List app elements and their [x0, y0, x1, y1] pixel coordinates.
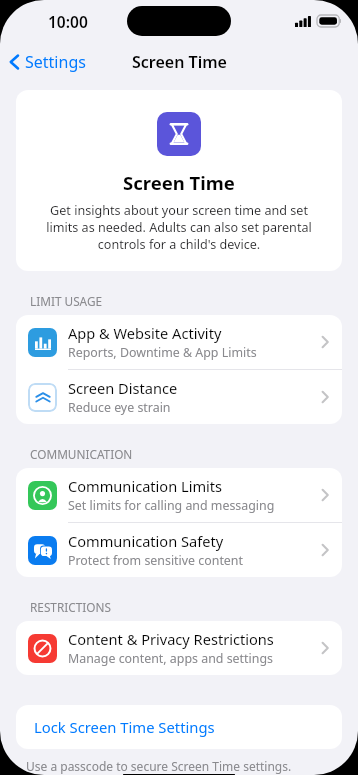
staticText: Protect from sensitive content [68, 552, 243, 569]
staticText: Content & Privacy Restrictions [68, 629, 274, 649]
button[interactable]: Settings [0, 47, 94, 77]
staticText: Set limits for calling and messaging [68, 497, 275, 514]
staticText: Screen Time [132, 51, 227, 73]
staticText: Communication Safety [68, 531, 224, 551]
button[interactable]: Content & Privacy Restrictions [16, 621, 342, 675]
button[interactable]: Communication Safety [16, 523, 342, 577]
staticText: LIMIT USAGE [30, 293, 103, 309]
button[interactable]: Lock Screen Time Settings [16, 705, 342, 749]
button[interactable]: Screen Distance [16, 370, 342, 424]
staticText: Reduce eye strain [68, 399, 171, 416]
staticText: Reports, Downtime & App Limits [68, 344, 257, 361]
staticText: Manage content, apps and settings [68, 650, 273, 667]
staticText: Screen Distance [68, 378, 178, 398]
staticText: Use a passcode to secure Screen Time set… [26, 758, 292, 774]
staticText: RESTRICTIONS [30, 599, 111, 615]
staticText: 10:00 [48, 11, 88, 32]
staticText: COMMUNICATION [30, 446, 133, 462]
staticText: Lock Screen Time Settings [34, 717, 215, 737]
button[interactable]: App & Website Activity [16, 315, 342, 369]
staticText: Get insights about your screen time and … [38, 202, 320, 253]
staticText: Settings [25, 51, 86, 73]
staticText: Screen Time [123, 170, 235, 195]
button[interactable]: Communication Limits [16, 468, 342, 522]
staticText: App & Website Activity [68, 323, 222, 343]
staticText: Communication Limits [68, 476, 223, 496]
